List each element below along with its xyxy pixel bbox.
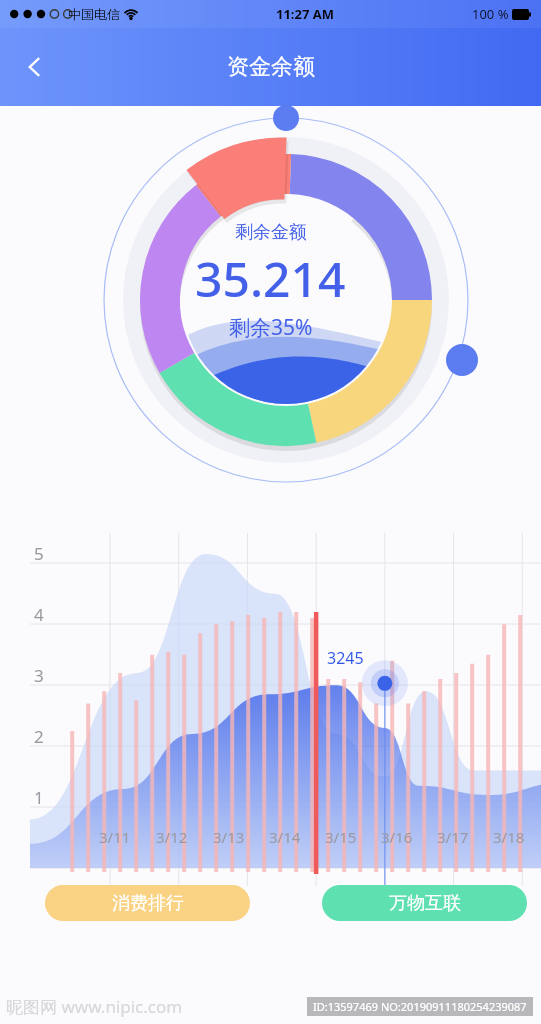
staticText: 2 (34, 725, 44, 748)
staticText: 35.214 (195, 246, 346, 311)
staticText: 3/17 (437, 827, 469, 847)
staticText: 3/12 (156, 827, 188, 847)
button[interactable]: 万物互联 (322, 885, 527, 921)
staticText: 3/11 (99, 827, 131, 847)
staticText: 11:27 AM (276, 5, 335, 23)
button[interactable]: Back (8, 40, 62, 94)
staticText: 3/16 (381, 827, 413, 847)
staticText: 4 (34, 603, 44, 626)
staticText: 昵图网 www.nipic.com (6, 995, 183, 1018)
staticText: 100 % (472, 5, 509, 23)
staticText: 3245 (327, 647, 364, 669)
staticText: 消费排行 (112, 892, 184, 915)
staticText: ID:13597469 NO:20190911180254239087 (313, 999, 527, 1014)
staticText: 剩余35% (229, 313, 313, 342)
staticText: 剩余金额 (235, 221, 307, 244)
staticText: 1 (34, 786, 44, 809)
staticText: 3 (34, 664, 44, 687)
staticText: 中国电信 (68, 6, 120, 22)
staticText: 3/18 (493, 827, 525, 847)
staticText: 5 (34, 542, 44, 565)
staticText: 3/13 (213, 827, 245, 847)
staticText: 资金余额 (227, 53, 315, 81)
staticText: 万物互联 (389, 892, 461, 915)
staticText: 3/15 (325, 827, 357, 847)
button[interactable]: 消费排行 (45, 885, 250, 921)
staticText: 3/14 (269, 827, 301, 847)
